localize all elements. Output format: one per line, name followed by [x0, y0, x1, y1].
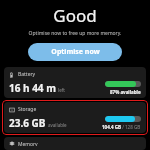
staticText: Storage: [18, 106, 37, 113]
other: Battery: [9, 72, 15, 78]
other: Storage: [9, 107, 15, 113]
button[interactable]: Memory: [4, 137, 146, 150]
staticText: available: [48, 122, 67, 128]
staticText: Optimise now: [51, 47, 100, 57]
staticText: Memory: [18, 141, 38, 146]
staticText: 16 h 44 m: [9, 81, 56, 94]
staticText: 23.6 GB: [9, 116, 46, 129]
staticText: / 128 GB: [121, 124, 141, 129]
button[interactable]: Battery: [4, 67, 146, 98]
staticText: Battery: [18, 71, 36, 78]
staticText: 104.4 GB: [102, 124, 121, 129]
staticText: left: [58, 87, 65, 93]
staticText: 87% available: [110, 89, 141, 94]
button[interactable]: Storage: [4, 102, 146, 133]
staticText: Good: [0, 4, 150, 27]
other: Memory: [9, 141, 15, 146]
button[interactable]: Optimise now: [28, 43, 122, 61]
staticText: Optimise now to free up more memory.: [0, 30, 150, 37]
